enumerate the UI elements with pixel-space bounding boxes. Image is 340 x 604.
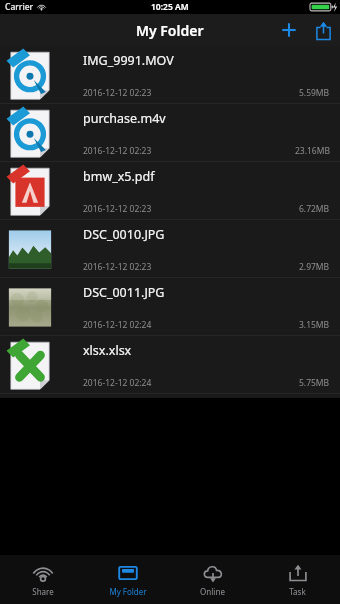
- staticText: xlsx.xlsx: [83, 342, 132, 359]
- staticText: purchase.m4v: [83, 110, 166, 127]
- staticText: 23.16MB: [295, 145, 330, 157]
- staticText: 2016-12-12 02:23: [83, 261, 152, 273]
- button[interactable]: IMG_9991.MOV: [0, 46, 340, 104]
- staticText: 5.75MB: [299, 377, 330, 389]
- staticText: DSC_0010.JPG: [83, 226, 165, 243]
- staticText: DSC_0011.JPG: [83, 284, 165, 301]
- button[interactable]: Online: [170, 555, 255, 604]
- staticText: 3.15MB: [299, 319, 330, 331]
- staticText: 6.72MB: [299, 203, 330, 215]
- button[interactable]: DSC_0011.JPG: [0, 278, 340, 336]
- staticText: Task: [289, 586, 306, 597]
- button[interactable]: Share: [306, 14, 340, 46]
- button[interactable]: xlsx.xlsx: [0, 336, 340, 394]
- staticText: My Folder: [136, 21, 204, 40]
- button[interactable]: bmw_x5.pdf: [0, 162, 340, 220]
- staticText: Online: [200, 586, 225, 597]
- button[interactable]: Share: [0, 555, 85, 604]
- staticText: Carrier: [5, 1, 34, 13]
- staticText: 2016-12-12 02:24: [83, 377, 152, 389]
- staticText: 2016-12-12 02:23: [83, 203, 152, 215]
- staticText: 2.97MB: [299, 261, 330, 273]
- button[interactable]: purchase.m4v: [0, 104, 340, 162]
- staticText: Share: [32, 586, 54, 597]
- staticText: 10:25 AM: [151, 1, 189, 13]
- button[interactable]: DSC_0010.JPG: [0, 220, 340, 278]
- staticText: 2016-12-12 02:24: [83, 319, 152, 331]
- staticText: IMG_9991.MOV: [83, 52, 174, 69]
- button[interactable]: Add: [272, 14, 306, 46]
- button[interactable]: Task: [255, 555, 340, 604]
- staticText: bmw_x5.pdf: [83, 168, 155, 185]
- staticText: 5.59MB: [299, 87, 330, 99]
- button[interactable]: My Folder: [85, 555, 170, 604]
- staticText: My Folder: [109, 586, 147, 597]
- staticText: 2016-12-12 02:23: [83, 145, 152, 157]
- staticText: 2016-12-12 02:23: [83, 87, 152, 99]
